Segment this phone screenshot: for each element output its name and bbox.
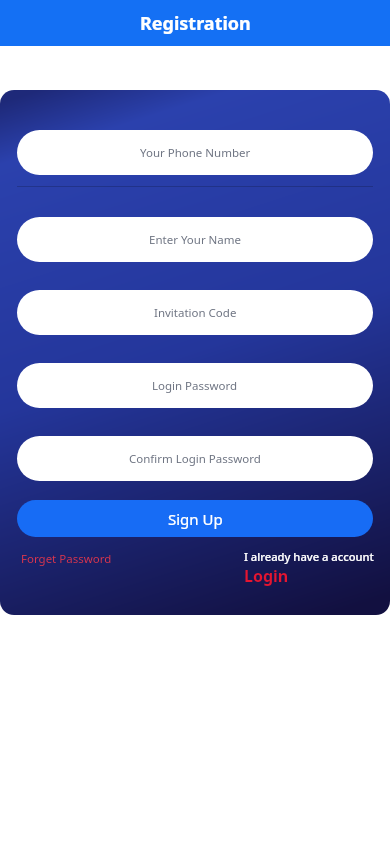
- staticText: Your Phone Number: [140, 145, 251, 161]
- button[interactable]: Login: [244, 565, 289, 587]
- staticText: Registration: [140, 11, 251, 36]
- button[interactable]: Forget Password: [21, 551, 112, 567]
- staticText: I already have a account: [244, 549, 374, 564]
- staticText: Login Password: [152, 378, 238, 394]
- button[interactable]: Login Password: [17, 363, 373, 408]
- button[interactable]: Sign Up: [17, 500, 373, 537]
- button[interactable]: Enter Your Name: [17, 217, 373, 262]
- button[interactable]: Invitation Code: [17, 290, 373, 335]
- staticText: Enter Your Name: [149, 232, 242, 248]
- button[interactable]: Your Phone Number: [17, 130, 373, 175]
- staticText: Sign Up: [168, 509, 223, 529]
- staticText: Confirm Login Password: [129, 451, 261, 467]
- button[interactable]: Confirm Login Password: [17, 436, 373, 481]
- staticText: Invitation Code: [154, 305, 237, 321]
